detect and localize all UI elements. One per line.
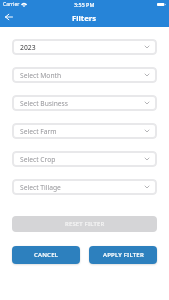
- staticText: Carrier: [3, 1, 20, 8]
- staticText: Select Crop: [20, 155, 56, 164]
- other: Battery: [157, 3, 166, 6]
- button[interactable]: 2023: [12, 39, 157, 55]
- button[interactable]: CANCEL: [12, 246, 80, 264]
- staticText: Select Business: [20, 99, 69, 108]
- staticText: Filters: [72, 13, 97, 23]
- button[interactable]: Select Business: [12, 95, 157, 111]
- staticText: Select Tillage: [20, 183, 61, 192]
- button[interactable]: Select Tillage: [12, 179, 157, 195]
- staticText: RESET FILTER: [65, 220, 105, 228]
- staticText: APPLY FILTER: [103, 251, 144, 259]
- button[interactable]: Select Farm: [12, 123, 157, 139]
- staticText: 3:55 PM: [74, 1, 95, 8]
- staticText: CANCEL: [34, 251, 59, 259]
- button[interactable]: RESET FILTER: [12, 216, 157, 232]
- staticText: Select Month: [20, 71, 62, 80]
- button[interactable]: APPLY FILTER: [89, 246, 157, 264]
- staticText: Select Farm: [20, 127, 57, 136]
- button[interactable]: Select Month: [12, 67, 157, 83]
- staticText: 2023: [20, 43, 36, 52]
- button[interactable]: Select Crop: [12, 151, 157, 167]
- button[interactable]: Back: [2, 10, 15, 23]
